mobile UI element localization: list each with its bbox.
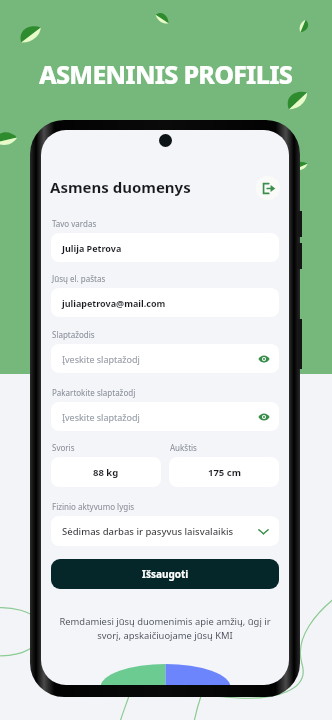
- staticText: Fizinio aktyvumo lygis: [52, 501, 135, 512]
- staticText: Aukštis: [170, 442, 197, 453]
- button[interactable]: 175 cm: [169, 457, 279, 487]
- staticText: Slaptažodis: [52, 329, 95, 340]
- staticText: Julija Petrova: [62, 242, 122, 254]
- button[interactable]: Įveskite slaptažodj: [51, 344, 279, 373]
- staticText: Įveskite slaptažodj: [62, 353, 140, 365]
- button[interactable]: Log out: [256, 176, 280, 200]
- staticText: 175 cm: [208, 466, 241, 479]
- staticText: Sėdimas darbas ir pasyvus laisvalaikis: [62, 525, 234, 538]
- button[interactable]: juliapetrova@mail.com: [51, 288, 279, 317]
- staticText: Įveskite slaptažodj: [62, 411, 140, 423]
- staticText: Pakartokite slaptažodj: [52, 387, 136, 398]
- staticText: Remdamiesi jūsų duomenimis apie amžių, ū…: [52, 615, 278, 642]
- staticText: Svoris: [52, 442, 75, 453]
- button[interactable]: Išsaugoti: [51, 559, 279, 589]
- staticText: 88 kg: [93, 466, 119, 479]
- button[interactable]: Sėdimas darbas ir pasyvus laisvalaikis: [51, 516, 279, 546]
- button[interactable]: Įveskite slaptažodj: [51, 402, 279, 431]
- button[interactable]: Show password: [258, 353, 270, 365]
- staticText: Išsaugoti: [142, 567, 189, 581]
- staticText: ASMENINIS PROFILIS: [39, 57, 293, 91]
- button[interactable]: Show password: [258, 411, 270, 423]
- button[interactable]: 88 kg: [51, 457, 161, 487]
- staticText: juliapetrova@mail.com: [62, 297, 166, 309]
- staticText: Asmens duomenys: [50, 177, 191, 197]
- button[interactable]: Julija Petrova: [51, 233, 279, 262]
- staticText: Jūsų el. paštas: [52, 273, 106, 284]
- staticText: Tavo vardas: [52, 218, 97, 229]
